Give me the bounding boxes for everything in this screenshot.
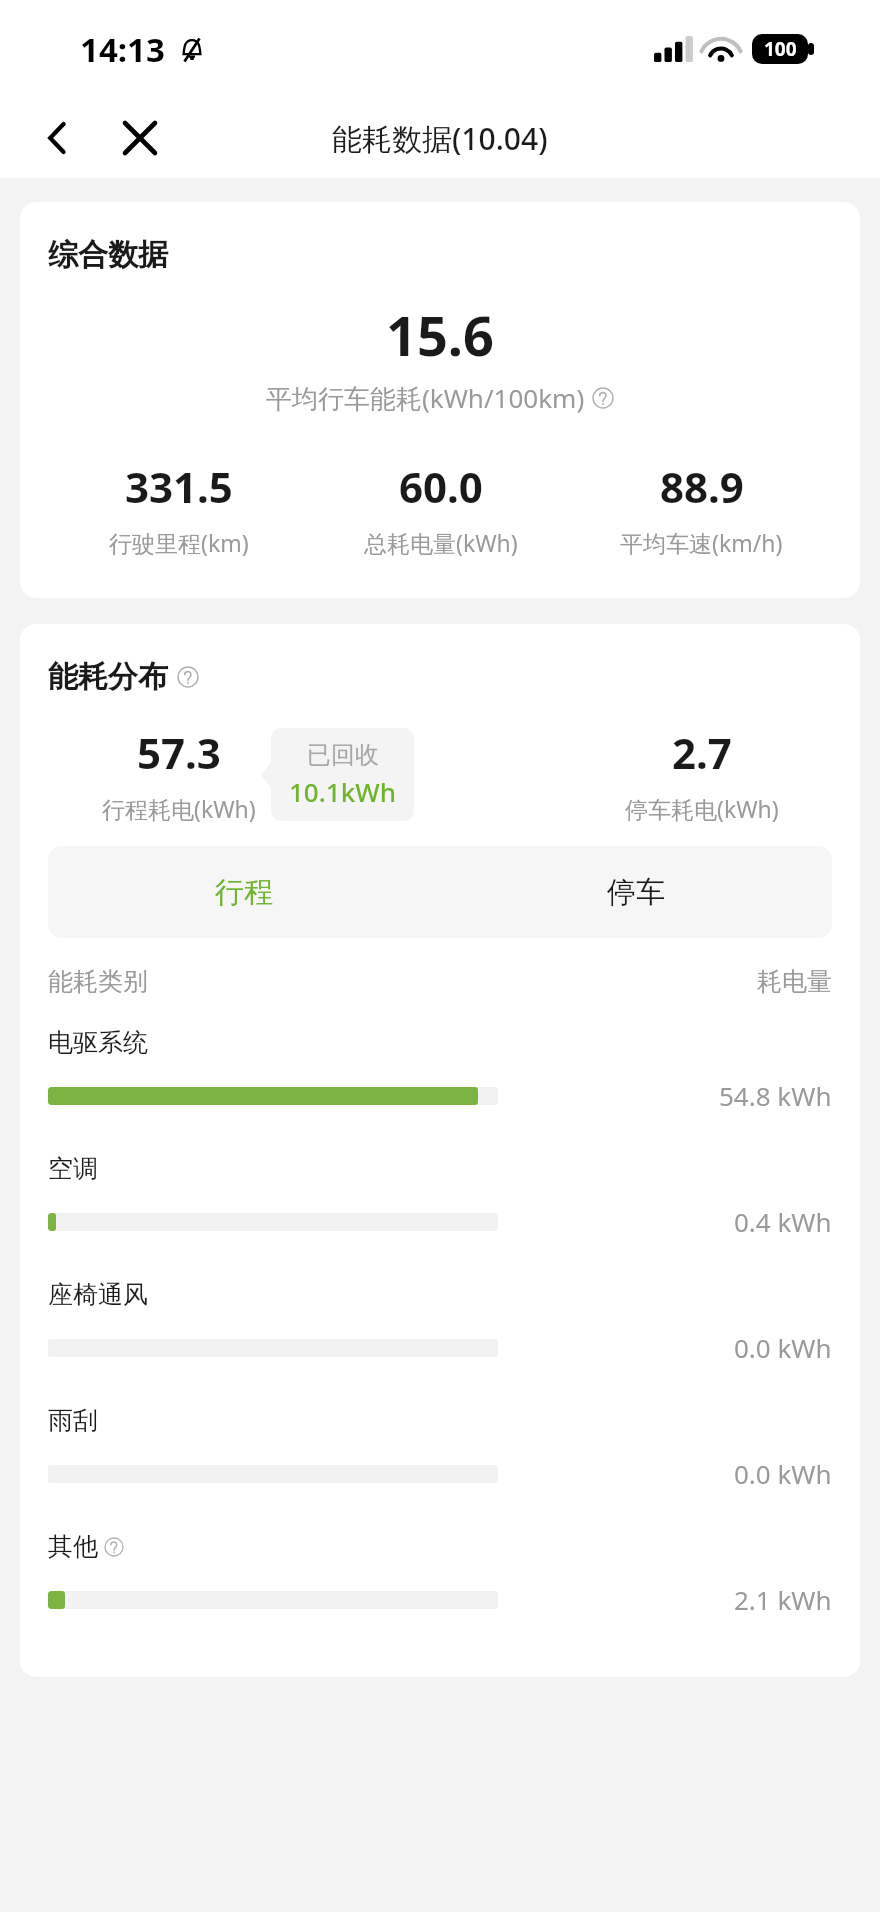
- button[interactable]: 座椅通风: [48, 1279, 832, 1365]
- button[interactable]: 空调: [48, 1153, 832, 1239]
- staticText: 平均车速(km/h): [620, 527, 783, 558]
- staticText: 空调: [48, 1153, 98, 1184]
- staticText: 10.1kWh: [289, 774, 396, 809]
- staticText: 平均行车能耗(kWh/100km): [266, 380, 585, 416]
- staticText: 0.0 kWh: [734, 1330, 832, 1365]
- staticText: 能耗类别: [48, 966, 148, 997]
- staticText: 其他: [48, 1531, 98, 1562]
- button[interactable]: 停车: [440, 846, 832, 938]
- button[interactable]: 电驱系统: [48, 1027, 832, 1113]
- staticText: 60.0: [399, 458, 483, 515]
- staticText: 54.8 kWh: [719, 1078, 832, 1113]
- staticText: 100: [764, 36, 797, 62]
- staticText: 行驶里程(km): [109, 527, 249, 558]
- staticText: 行程耗电(kWh): [102, 793, 256, 824]
- staticText: 14:13: [80, 27, 165, 72]
- staticText: 座椅通风: [48, 1279, 148, 1310]
- button[interactable]: Back: [30, 110, 86, 166]
- staticText: 总耗电量(kWh): [364, 527, 518, 558]
- staticText: 综合数据: [48, 236, 168, 274]
- staticText: 电驱系统: [48, 1027, 148, 1058]
- staticText: 88.9: [660, 458, 744, 515]
- staticText: 停车: [607, 874, 665, 911]
- staticText: 已回收: [307, 740, 379, 770]
- button[interactable]: 雨刮: [48, 1405, 832, 1491]
- staticText: 能耗分布: [48, 658, 168, 696]
- staticText: 0.0 kWh: [734, 1456, 832, 1491]
- staticText: 57.3: [137, 724, 221, 781]
- staticText: 雨刮: [48, 1405, 98, 1436]
- staticText: 能耗数据(10.04): [332, 118, 548, 159]
- button[interactable]: 其他: [48, 1531, 832, 1617]
- staticText: 行程: [215, 874, 273, 911]
- button[interactable]: 已回收: [289, 740, 396, 809]
- staticText: 2.7: [672, 724, 732, 781]
- staticText: 停车耗电(kWh): [625, 793, 779, 824]
- staticText: 331.5: [125, 458, 233, 515]
- staticText: 0.4 kWh: [734, 1204, 832, 1239]
- staticText: 15.6: [386, 298, 494, 372]
- button[interactable]: Close: [110, 108, 170, 168]
- button[interactable]: 行程: [48, 846, 440, 938]
- staticText: 2.1 kWh: [734, 1582, 832, 1617]
- staticText: 耗电量: [757, 966, 832, 997]
